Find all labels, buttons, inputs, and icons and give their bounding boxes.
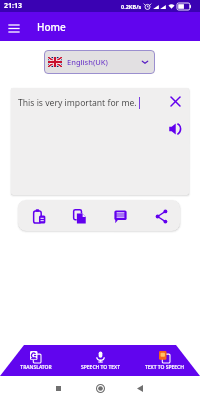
button[interactable]: SPEECH TO TEXT — [68, 345, 132, 376]
button[interactable]: TEXT TO SPEECH — [132, 345, 196, 376]
button[interactable]: Comment — [109, 205, 131, 227]
staticText: English(UK) — [67, 57, 108, 67]
button[interactable]: Copy — [68, 205, 90, 227]
button[interactable]: Share — [150, 205, 172, 227]
button[interactable]: Clear text — [168, 94, 182, 108]
staticText: TRANSLATOR — [20, 364, 52, 371]
button[interactable]: English(UK) — [44, 50, 155, 74]
staticText: TEXT TO SPEECH — [145, 364, 184, 371]
staticText: Home — [37, 20, 66, 34]
button[interactable]: Menu — [2, 16, 26, 40]
button[interactable]: Speak text — [167, 121, 183, 137]
button[interactable]: TRANSLATOR — [3, 345, 68, 376]
button[interactable]: Recents — [49, 379, 67, 397]
button[interactable]: Back — [131, 379, 149, 397]
staticText: SPEECH TO TEXT — [81, 364, 120, 371]
button[interactable]: Paste — [28, 205, 50, 227]
button[interactable]: Home — [91, 379, 109, 397]
staticText: 21:13 — [4, 1, 22, 11]
staticText: This is very important for me. — [18, 97, 137, 109]
staticText: 0.2KB/s — [121, 3, 142, 10]
